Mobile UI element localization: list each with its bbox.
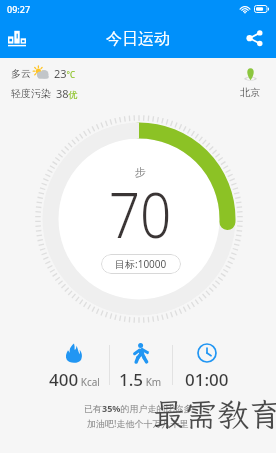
button[interactable]: 400 Kcal [42,343,106,391]
button[interactable]: 1.5 Km [111,343,170,391]
staticText: 01:00 [185,368,229,391]
staticText: 400 Kcal [49,368,100,391]
staticText: 23°C [54,66,76,81]
staticText: 70 [109,171,171,257]
staticText: 多云 [11,67,31,80]
staticText: 09:27 [7,3,31,15]
button[interactable]: 01:00 [175,343,239,391]
staticText: 1.5 Km [119,368,162,391]
staticText: 今日运动 [106,29,170,49]
button[interactable]: 北京 [238,68,262,99]
staticText: 最需教育 [153,393,276,435]
staticText: 轻度污染 [11,87,51,100]
staticText: 38优 [56,86,78,101]
button[interactable]: 目标:10000 [115,257,167,271]
button[interactable]: Share [240,23,270,53]
staticText: 加油吧!走他个十万八千里 [87,417,189,429]
button[interactable]: Ranking [2,23,32,53]
staticText: 步 [135,165,146,179]
staticText: 目标:10000 [115,257,167,271]
staticText: 已有35%的用户走的比你多 [84,402,193,414]
staticText: 北京 [240,86,260,99]
